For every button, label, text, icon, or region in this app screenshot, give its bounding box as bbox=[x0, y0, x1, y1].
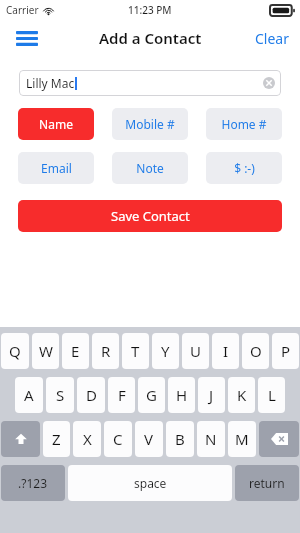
staticText: O bbox=[250, 341, 262, 361]
staticText: space bbox=[134, 475, 167, 491]
staticText: Mobile # bbox=[125, 116, 175, 132]
staticText: E bbox=[71, 341, 80, 361]
staticText: W bbox=[39, 341, 53, 361]
staticText: 11:23 PM bbox=[128, 3, 172, 17]
staticText: V bbox=[144, 429, 154, 449]
staticText: L bbox=[268, 385, 276, 405]
staticText: U bbox=[190, 341, 201, 361]
button[interactable]: N bbox=[197, 421, 225, 457]
button[interactable]: M bbox=[228, 421, 256, 457]
staticText: return bbox=[249, 475, 285, 491]
staticText: $ :-) bbox=[234, 160, 255, 176]
staticText: B bbox=[175, 429, 185, 449]
button[interactable]: Clear text bbox=[263, 77, 275, 89]
staticText: D bbox=[86, 385, 97, 405]
button[interactable]: S bbox=[46, 377, 74, 413]
button[interactable]: P bbox=[272, 333, 299, 369]
button[interactable]: B bbox=[166, 421, 194, 457]
staticText: Save Contact bbox=[111, 207, 190, 225]
button[interactable]: Z bbox=[43, 421, 70, 457]
staticText: Y bbox=[161, 341, 170, 361]
staticText: Name bbox=[39, 116, 73, 132]
button[interactable]: G bbox=[138, 377, 165, 413]
button[interactable]: X bbox=[73, 421, 101, 457]
button[interactable]: Q bbox=[1, 333, 29, 369]
button[interactable]: K bbox=[228, 377, 255, 413]
button[interactable]: V bbox=[135, 421, 163, 457]
staticText: N bbox=[205, 429, 217, 449]
staticText: H bbox=[176, 385, 188, 405]
staticText: F bbox=[118, 385, 126, 405]
staticText: Email bbox=[41, 160, 72, 176]
staticText: Z bbox=[52, 429, 61, 449]
button[interactable]: J bbox=[198, 377, 225, 413]
button[interactable]: A bbox=[15, 377, 43, 413]
staticText: Note bbox=[136, 160, 164, 176]
button[interactable]: H bbox=[168, 377, 195, 413]
staticText: C bbox=[113, 429, 123, 449]
button[interactable]: R bbox=[92, 333, 119, 369]
staticText: P bbox=[281, 341, 291, 361]
staticText: Clear bbox=[255, 29, 289, 48]
button[interactable]: Home # bbox=[206, 108, 282, 140]
staticText: Q bbox=[9, 341, 21, 361]
staticText: R bbox=[101, 341, 111, 361]
button[interactable]: Save Contact bbox=[18, 200, 282, 232]
staticText: M bbox=[235, 429, 249, 449]
staticText: Lilly Mac bbox=[26, 75, 75, 91]
button[interactable]: Lilly Mac bbox=[19, 70, 281, 96]
button[interactable]: Mobile # bbox=[112, 108, 188, 140]
staticText: A bbox=[24, 385, 34, 405]
button[interactable]: Menu bbox=[10, 24, 44, 52]
staticText: Add a Contact bbox=[99, 28, 202, 48]
button[interactable]: Note bbox=[112, 152, 188, 184]
button[interactable]: Y bbox=[152, 333, 179, 369]
button[interactable]: Name bbox=[18, 108, 94, 140]
button[interactable]: return bbox=[235, 465, 299, 501]
button[interactable]: .?123 bbox=[1, 465, 65, 501]
button[interactable]: space bbox=[68, 465, 232, 501]
button[interactable]: W bbox=[32, 333, 59, 369]
staticText: X bbox=[83, 429, 92, 449]
button[interactable]: T bbox=[122, 333, 149, 369]
button[interactable]: I bbox=[212, 333, 239, 369]
button[interactable]: U bbox=[182, 333, 209, 369]
button[interactable]: Backspace bbox=[259, 421, 299, 457]
staticText: S bbox=[56, 385, 65, 405]
button[interactable]: L bbox=[258, 377, 285, 413]
button[interactable]: F bbox=[108, 377, 135, 413]
button[interactable]: D bbox=[77, 377, 105, 413]
button[interactable]: Email bbox=[18, 152, 94, 184]
staticText: .?123 bbox=[18, 475, 48, 491]
staticText: K bbox=[237, 385, 247, 405]
staticText: T bbox=[131, 341, 140, 361]
button[interactable]: Clear bbox=[252, 25, 292, 52]
button[interactable]: C bbox=[104, 421, 132, 457]
staticText: G bbox=[146, 385, 157, 405]
button[interactable]: O bbox=[242, 333, 269, 369]
button[interactable]: E bbox=[62, 333, 89, 369]
button[interactable]: Shift bbox=[1, 421, 40, 457]
button[interactable]: $ :-) bbox=[206, 152, 282, 184]
staticText: J bbox=[209, 385, 214, 405]
staticText: Home # bbox=[221, 116, 267, 132]
staticText: I bbox=[223, 341, 229, 361]
staticText: Carrier bbox=[6, 3, 39, 17]
